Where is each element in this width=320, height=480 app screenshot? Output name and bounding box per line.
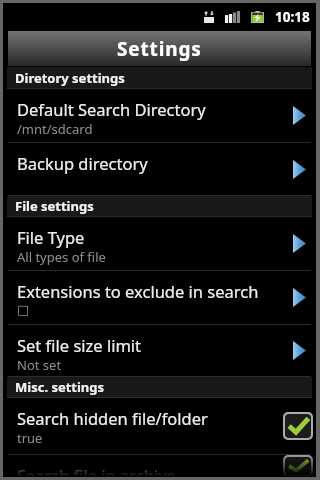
staticText: Extensions to exclude in search: [17, 280, 259, 302]
staticText: Misc. settings: [15, 378, 105, 396]
button[interactable]: Extensions to exclude in search: [3, 271, 316, 324]
button[interactable]: Set file size limit: [3, 325, 316, 376]
button[interactable]: Search file in archive: [3, 455, 316, 477]
staticText: 10:18: [275, 8, 310, 26]
button[interactable]: Default Search Directory: [3, 89, 316, 142]
staticText: true: [17, 429, 43, 447]
other: Default Search Directory: [283, 89, 316, 142]
staticText: Default Search Directory: [17, 98, 206, 120]
staticText: Diretory settings: [15, 69, 125, 87]
staticText: □: [17, 302, 30, 317]
staticText: File settings: [15, 197, 94, 215]
staticText: Settings: [117, 36, 202, 62]
other: Set file size limit: [283, 325, 316, 376]
staticText: Search hidden file/folder: [17, 407, 208, 429]
staticText: File Type: [17, 226, 85, 248]
staticText: /mnt/sdcard: [17, 120, 93, 138]
other: Backup directory: [283, 143, 316, 195]
staticText: Search file in archive: [17, 464, 176, 477]
button[interactable]: Search hidden file/folder: [3, 398, 316, 454]
staticText: Set file size limit: [17, 334, 142, 356]
staticText: Not set: [17, 356, 62, 374]
button[interactable]: Backup directory: [3, 143, 316, 195]
staticText: All types of file: [17, 248, 106, 266]
other: Search file in archive: [280, 455, 316, 477]
other: File Type: [283, 217, 316, 270]
other: Extensions to exclude in search: [283, 271, 316, 324]
button[interactable]: File Type: [3, 217, 316, 270]
staticText: Backup directory: [17, 152, 148, 174]
other: Search hidden file/folder: [280, 398, 316, 454]
